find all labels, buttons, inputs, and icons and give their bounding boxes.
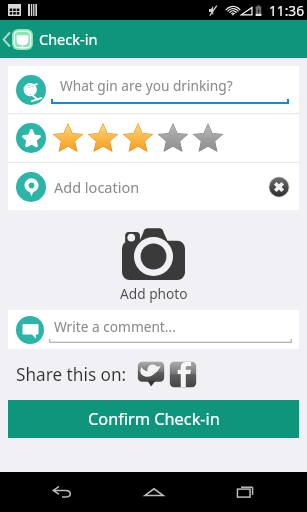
button[interactable]: Clear location <box>264 172 294 202</box>
button[interactable]: Confirm Check-in <box>8 400 299 438</box>
button[interactable]: Add photo <box>0 228 307 303</box>
staticText: 11:36 <box>269 1 304 20</box>
button[interactable]: Back <box>0 20 12 58</box>
button[interactable]: Home <box>124 472 184 512</box>
staticText: Check-in <box>39 29 98 49</box>
button[interactable]: Rate 5 stars <box>190 121 225 155</box>
button[interactable]: Write a comment... <box>8 310 299 349</box>
staticText: What gin are you drinking? <box>60 76 233 95</box>
button[interactable]: Rate 1 stars <box>50 121 85 155</box>
staticText: Add location <box>54 177 264 197</box>
button[interactable]: Recents <box>215 472 275 512</box>
button[interactable]: Rate 3 stars <box>120 121 155 155</box>
button[interactable]: Share on Twitter <box>137 360 165 388</box>
staticText: Share this on: <box>16 363 127 386</box>
staticText: Write a comment... <box>54 317 176 336</box>
button[interactable]: Back <box>32 472 92 512</box>
button[interactable]: Rate 2 stars <box>85 121 120 155</box>
button[interactable]: Rate 4 stars <box>155 121 190 155</box>
button[interactable]: What gin are you drinking? <box>8 66 299 113</box>
staticText: Add photo <box>120 284 188 303</box>
button[interactable]: Add location <box>8 163 299 210</box>
staticText: Confirm Check-in <box>88 408 220 430</box>
button[interactable]: Share on Facebook <box>169 360 197 388</box>
